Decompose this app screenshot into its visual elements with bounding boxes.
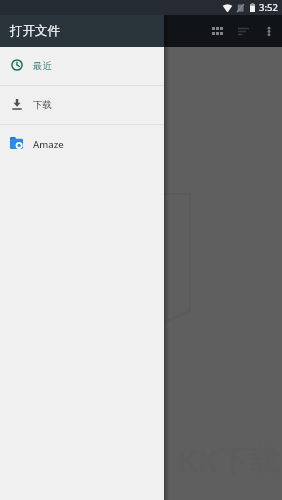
button[interactable]: 下载 [0, 86, 164, 124]
button[interactable]: Grid view [203, 15, 231, 47]
button[interactable]: Amaze [0, 125, 164, 163]
button[interactable]: 最近 [0, 47, 164, 85]
button[interactable]: More options [256, 15, 282, 47]
staticText: 3:52 [259, 1, 278, 14]
staticText: 下载 [33, 99, 52, 111]
button[interactable]: Sort [231, 15, 256, 47]
staticText: 打开文件 [10, 23, 60, 39]
staticText: 最近 [33, 60, 52, 72]
staticText: Amaze [33, 138, 64, 151]
